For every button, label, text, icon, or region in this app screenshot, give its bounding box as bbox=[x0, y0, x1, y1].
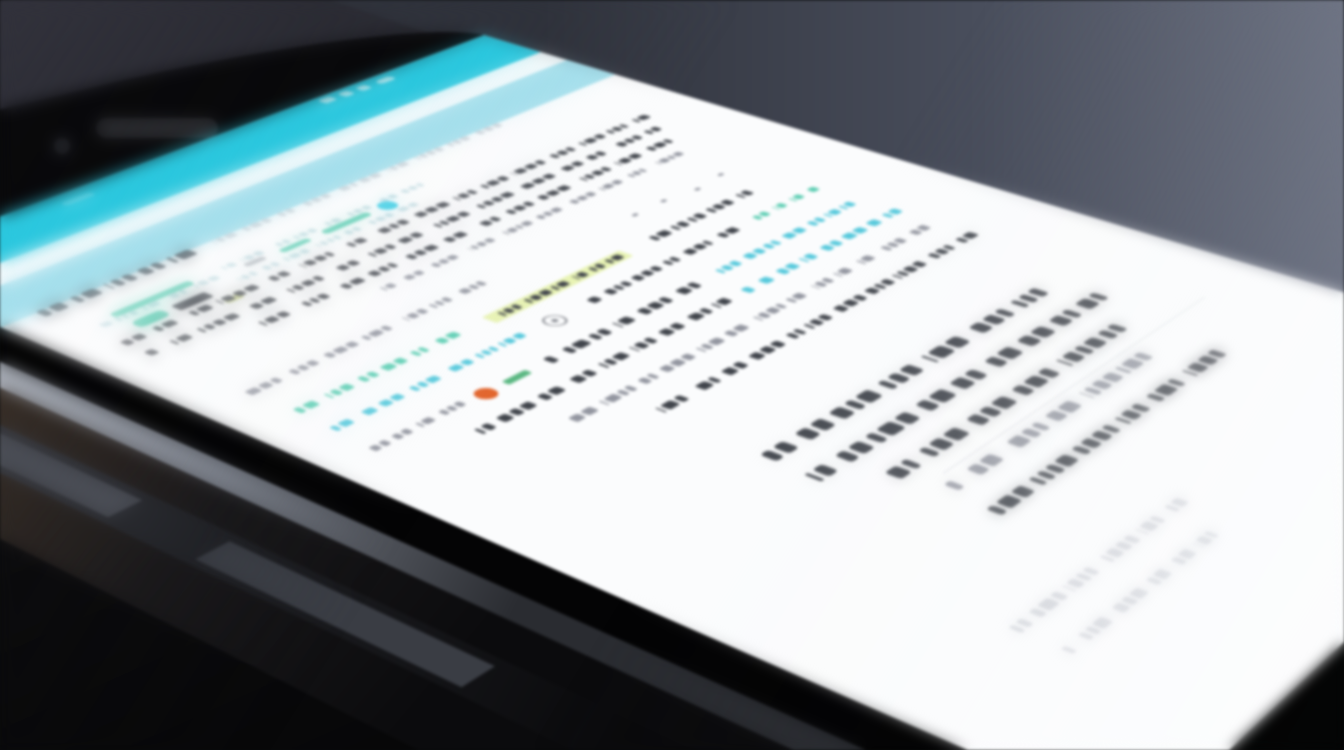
button[interactable]: List item 1 bbox=[90, 110, 850, 190]
button[interactable]: App bar bbox=[60, 8, 620, 78]
button[interactable]: List item 3 bbox=[260, 240, 1100, 320]
button[interactable]: List item 5 bbox=[520, 400, 1320, 490]
button[interactable]: List item 2 bbox=[170, 175, 970, 255]
button[interactable]: Search bbox=[30, 60, 590, 120]
button[interactable]: List item 4 bbox=[360, 310, 1220, 400]
